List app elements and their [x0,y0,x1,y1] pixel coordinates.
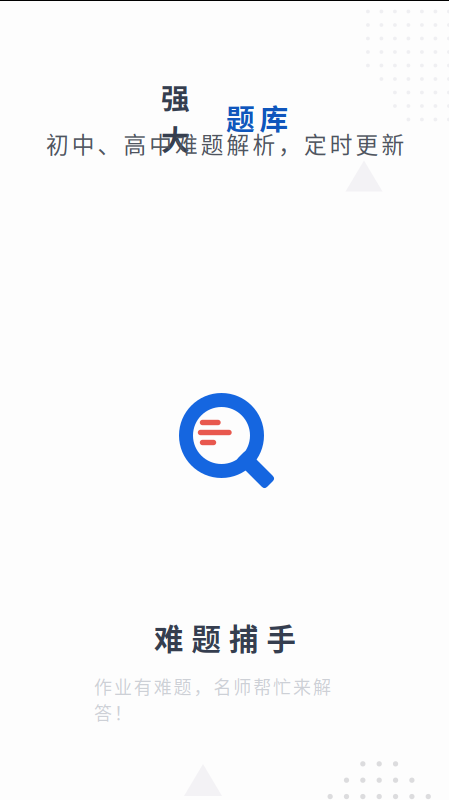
staticText: 难题捕手 [154,616,295,658]
staticText: 题库 [226,97,288,138]
staticText: 作业有难题，名师帮忙来解答！ [94,673,371,699]
staticText: 初中、高中难题解析，定时更新 [46,127,404,160]
staticText: 强大 [161,76,190,159]
